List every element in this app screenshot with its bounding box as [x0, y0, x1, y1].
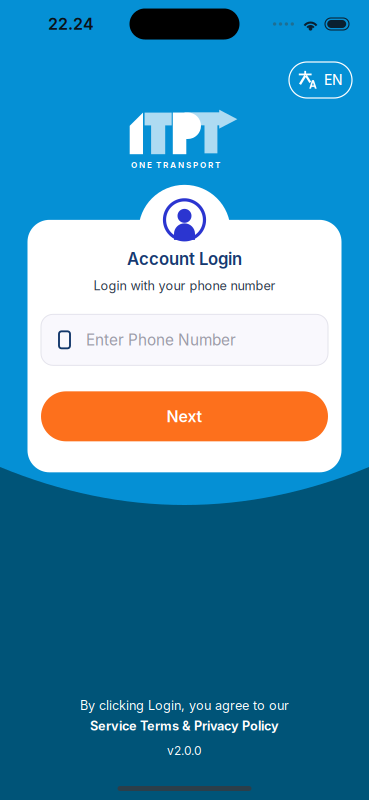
staticText: Service Terms & Privacy Policy [90, 718, 279, 733]
staticText: v2.0.0 [167, 743, 202, 758]
staticText: Login with your phone number [93, 278, 275, 293]
staticText: O N E T R A N S P O R T [131, 160, 220, 170]
button[interactable]: Enter Phone Number [41, 314, 328, 365]
staticText: Next [166, 407, 202, 426]
staticText: EN [324, 71, 343, 88]
button[interactable]: Change language [289, 62, 352, 98]
staticText: Enter Phone Number [86, 331, 236, 349]
button[interactable]: Next [41, 391, 328, 441]
staticText: Account Login [127, 249, 242, 269]
staticText: By clicking Login, you agree to our [80, 698, 289, 713]
staticText: 22.24 [48, 14, 94, 34]
